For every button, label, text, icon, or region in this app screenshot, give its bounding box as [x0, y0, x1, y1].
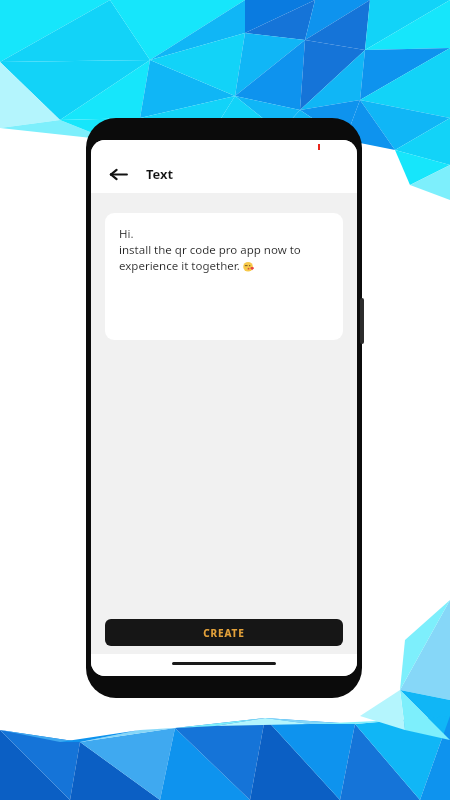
staticText: experience it together.	[119, 258, 243, 274]
staticText: Text	[146, 165, 174, 183]
staticText: Hi.	[119, 226, 134, 242]
staticText: CREATE	[203, 626, 245, 640]
button[interactable]: CREATE	[105, 619, 343, 646]
button[interactable]: Hi.	[105, 213, 343, 340]
button[interactable]: Back	[103, 159, 133, 189]
staticText: install the qr code pro app now to	[119, 242, 301, 258]
